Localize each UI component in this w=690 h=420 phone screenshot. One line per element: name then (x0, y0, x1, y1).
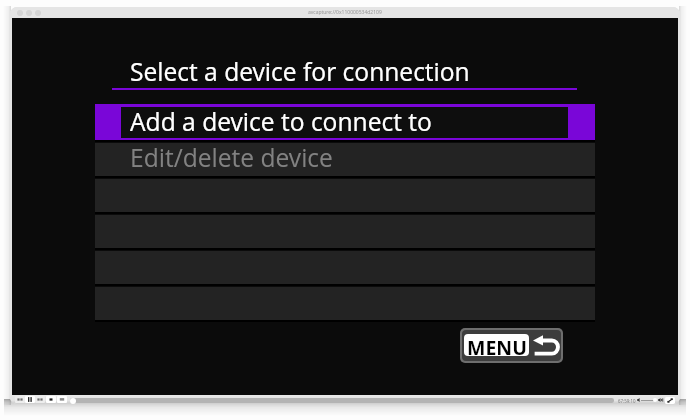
button[interactable]: MENU back (460, 328, 563, 363)
button[interactable]: Edit/delete device (95, 142, 595, 178)
staticText: Select a device for connection (130, 55, 470, 89)
staticText: Edit/delete device (130, 141, 333, 175)
button[interactable]: Full screen (665, 397, 675, 404)
button[interactable]: Playhead (70, 398, 76, 404)
button[interactable] (95, 286, 595, 322)
button[interactable]: Pause (25, 396, 35, 403)
staticText: MENU (467, 334, 527, 356)
button[interactable]: Fast forward (35, 396, 45, 403)
staticText: 67:59:10 (618, 398, 636, 404)
button[interactable] (95, 214, 595, 250)
button[interactable]: Rewind (15, 396, 25, 403)
staticText: Add a device to connect to (130, 105, 432, 139)
button[interactable]: Record (46, 396, 56, 403)
button[interactable] (95, 178, 595, 214)
button[interactable]: Add a device to connect to (95, 104, 595, 142)
button[interactable] (95, 250, 595, 286)
button[interactable]: Screen (57, 396, 67, 403)
staticText: avcapture://0x110000534d2109 (308, 9, 382, 16)
